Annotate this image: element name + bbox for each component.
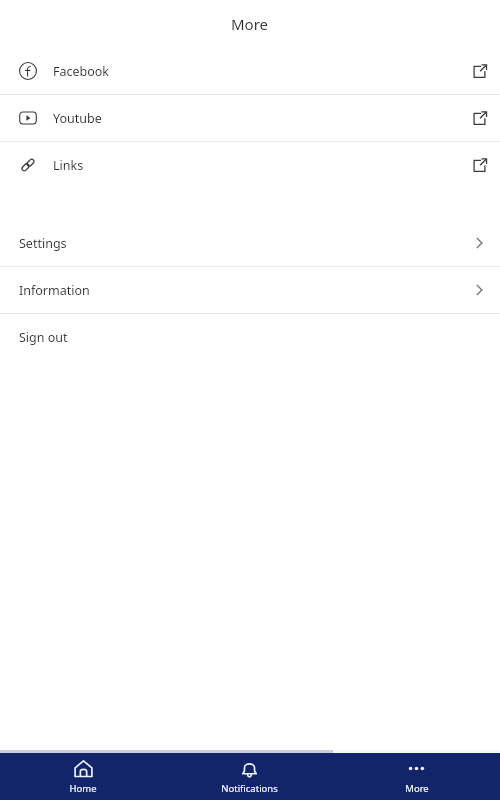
button[interactable]: More [333,753,500,800]
button[interactable]: Facebook [0,48,500,94]
staticText: Home [69,782,97,795]
staticText: Links [53,157,84,174]
other: Links [19,156,37,174]
staticText: More [231,14,269,34]
staticText: Information [19,282,90,299]
staticText: Facebook [53,63,110,80]
button[interactable]: Settings [0,220,500,266]
staticText: Sign out [19,329,68,346]
button[interactable]: Sign out [0,314,500,360]
other: Facebook [19,62,37,80]
button[interactable]: Notifications [166,753,333,800]
button[interactable]: Information [0,267,500,313]
button[interactable]: Home [0,753,166,800]
button[interactable]: Youtube [0,95,500,141]
staticText: Youtube [53,110,102,127]
staticText: More [405,782,429,795]
other: Youtube [19,109,37,127]
staticText: Settings [19,235,67,252]
button[interactable]: Links [0,142,500,188]
staticText: Notifications [221,782,278,795]
